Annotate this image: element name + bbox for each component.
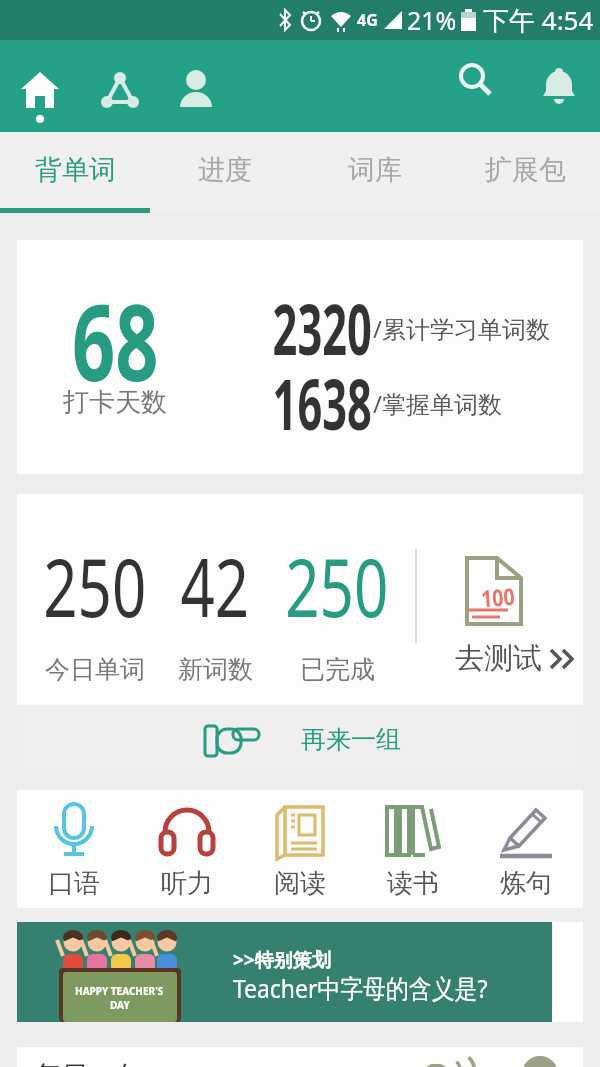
button[interactable]: 词库 — [300, 132, 450, 208]
button[interactable]: 口语 — [17, 790, 130, 908]
button[interactable]: 炼句 — [469, 790, 582, 908]
button[interactable] — [537, 64, 581, 108]
button[interactable]: 68 — [17, 240, 583, 474]
staticText: Teacher中字母的含义是? — [233, 970, 488, 1006]
staticText: >>特别策划 — [233, 947, 331, 973]
button[interactable]: HAPPY TEACHER'S — [17, 922, 583, 1022]
staticText: 背单词 — [35, 153, 116, 187]
staticText: 2320 — [273, 280, 372, 375]
staticText: 打卡天数 — [63, 386, 167, 419]
button[interactable] — [174, 68, 218, 112]
staticText: 1638 — [273, 355, 372, 450]
staticText: 250 — [285, 531, 389, 640]
staticText: HAPPY TEACHER'S — [75, 984, 164, 998]
button[interactable]: 扩展包 — [450, 132, 600, 208]
button[interactable]: 每日一句 — [17, 1047, 583, 1067]
staticText: 去测试 — [455, 640, 542, 677]
staticText: 进度 — [198, 153, 252, 187]
staticText: 100 — [480, 580, 516, 613]
staticText: 68 — [72, 269, 159, 389]
button[interactable]: 背单词 — [0, 132, 150, 208]
staticText: 今日单词 — [45, 654, 145, 685]
staticText: 新词数 — [178, 654, 253, 685]
button[interactable]: 阅读 — [243, 790, 356, 908]
staticText: /累计学习单词数 — [373, 312, 550, 345]
button[interactable]: 100 — [427, 494, 583, 705]
staticText: 听力 — [161, 867, 213, 900]
button[interactable]: 听力 — [130, 790, 243, 908]
staticText: /掌握单词数 — [373, 387, 502, 420]
staticText: 250 — [43, 531, 147, 640]
button[interactable] — [454, 58, 498, 102]
staticText: 炼句 — [500, 867, 552, 900]
staticText: 扩展包 — [485, 153, 566, 187]
button[interactable] — [18, 68, 62, 112]
staticText: 再来一组 — [301, 724, 401, 755]
staticText: 4G — [357, 9, 378, 31]
button[interactable] — [98, 68, 142, 112]
staticText: DAY — [110, 998, 130, 1012]
staticText: 21% — [407, 3, 457, 37]
staticText: 下午 4:54 — [483, 2, 594, 38]
staticText: 口语 — [48, 867, 100, 900]
staticText: 42 — [180, 531, 249, 640]
staticText: 阅读 — [274, 867, 326, 900]
button[interactable]: 进度 — [150, 132, 300, 208]
staticText: 读书 — [387, 867, 439, 900]
staticText: 已完成 — [300, 654, 375, 685]
button[interactable]: 读书 — [356, 790, 469, 908]
button[interactable]: 再来一组 — [17, 705, 583, 775]
staticText: 词库 — [348, 153, 402, 187]
staticText: 每日一句 — [35, 1059, 143, 1067]
